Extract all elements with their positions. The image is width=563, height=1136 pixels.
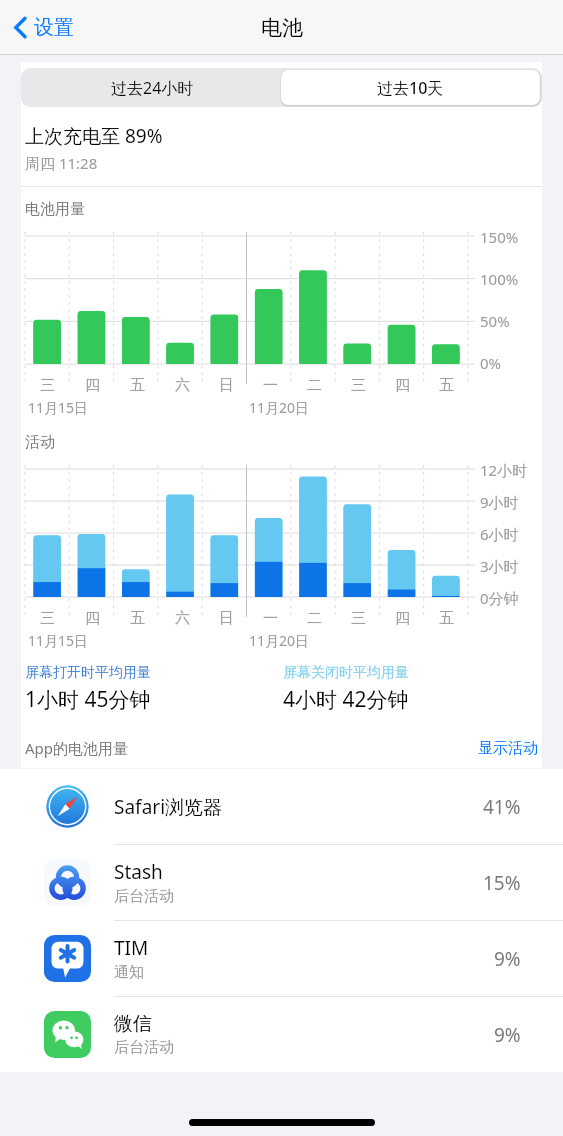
staticText: 周四 11:28 bbox=[25, 153, 98, 173]
staticText: 五 bbox=[439, 376, 454, 395]
staticText: 通知 bbox=[114, 963, 144, 982]
staticText: App的电池用量 bbox=[25, 738, 129, 758]
staticText: 六 bbox=[175, 609, 190, 628]
staticText: 0% bbox=[480, 353, 502, 373]
staticText: 活动 bbox=[25, 433, 55, 452]
staticText: 后台活动 bbox=[114, 887, 174, 906]
staticText: 50% bbox=[480, 311, 510, 331]
staticText: 12小时 bbox=[480, 460, 528, 478]
staticText: 1小时 45分钟 bbox=[25, 685, 151, 714]
staticText: Safari浏览器 bbox=[114, 794, 223, 820]
staticText: 三 bbox=[40, 609, 55, 628]
staticText: 屏幕打开时平均用量 bbox=[25, 664, 151, 682]
staticText: 电池 bbox=[261, 15, 303, 41]
staticText: 11月20日 bbox=[249, 398, 310, 417]
staticText: 三 bbox=[351, 376, 366, 395]
staticText: 二 bbox=[307, 376, 322, 395]
staticText: 11月20日 bbox=[249, 631, 310, 650]
staticText: 4小时 42分钟 bbox=[283, 685, 409, 714]
staticText: 上次充电至 89% bbox=[25, 123, 163, 149]
staticText: 41% bbox=[483, 794, 521, 820]
staticText: 一 bbox=[263, 609, 278, 628]
button[interactable]: 设置 bbox=[8, 7, 80, 48]
staticText: 3小时 bbox=[480, 556, 519, 574]
staticText: 屏幕关闭时平均用量 bbox=[283, 664, 409, 682]
staticText: 日 bbox=[219, 609, 234, 628]
staticText: 过去24小时 bbox=[111, 77, 194, 99]
staticText: 6小时 bbox=[480, 524, 519, 542]
staticText: Stash bbox=[114, 859, 163, 885]
button[interactable]: 微信 bbox=[0, 997, 563, 1072]
button[interactable]: 过去10天 bbox=[281, 70, 540, 105]
staticText: 过去10天 bbox=[377, 77, 444, 99]
button[interactable]: 过去24小时 bbox=[23, 70, 281, 105]
staticText: 150% bbox=[480, 227, 519, 247]
staticText: 五 bbox=[439, 609, 454, 628]
staticText: 三 bbox=[351, 609, 366, 628]
staticText: 五 bbox=[130, 609, 145, 628]
button[interactable]: Safari浏览器 bbox=[0, 769, 563, 844]
staticText: 二 bbox=[307, 609, 322, 628]
button[interactable]: 显示活动 bbox=[478, 739, 538, 758]
staticText: 9% bbox=[494, 946, 521, 972]
staticText: 9% bbox=[494, 1022, 521, 1048]
staticText: 显示活动 bbox=[478, 739, 538, 758]
staticText: TIM bbox=[114, 935, 149, 961]
staticText: 微信 bbox=[114, 1012, 152, 1036]
staticText: 一 bbox=[263, 376, 278, 395]
staticText: 日 bbox=[219, 376, 234, 395]
staticText: 四 bbox=[395, 609, 410, 628]
staticText: 五 bbox=[130, 376, 145, 395]
staticText: 后台活动 bbox=[114, 1038, 174, 1057]
button[interactable]: Stash bbox=[0, 845, 563, 920]
staticText: 9小时 bbox=[480, 492, 519, 510]
staticText: 15% bbox=[483, 870, 521, 896]
staticText: 四 bbox=[85, 376, 100, 395]
staticText: 四 bbox=[85, 609, 100, 628]
staticText: 11月15日 bbox=[28, 631, 89, 650]
staticText: 11月15日 bbox=[28, 398, 89, 417]
staticText: 100% bbox=[480, 269, 519, 289]
staticText: 0分钟 bbox=[480, 588, 519, 606]
staticText: 六 bbox=[175, 376, 190, 395]
button[interactable]: TIM bbox=[0, 921, 563, 996]
staticText: 设置 bbox=[34, 15, 74, 40]
staticText: 三 bbox=[40, 376, 55, 395]
staticText: 四 bbox=[395, 376, 410, 395]
staticText: 电池用量 bbox=[25, 200, 85, 219]
